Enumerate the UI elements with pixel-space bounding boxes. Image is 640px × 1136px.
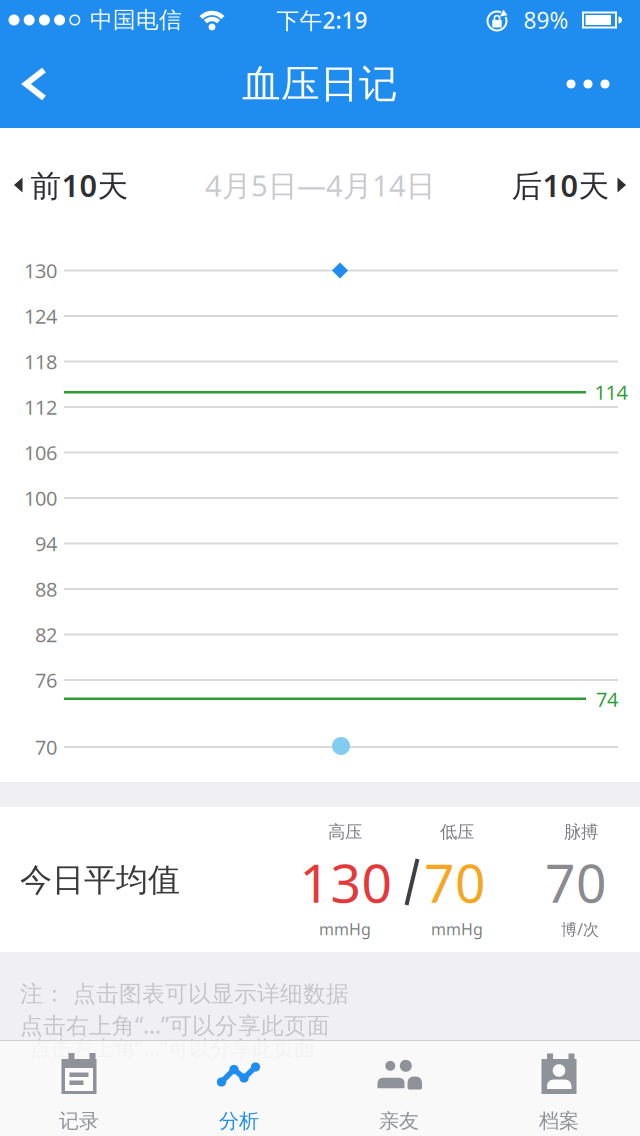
- staticText: 74: [596, 686, 618, 712]
- staticText: 89%: [523, 5, 568, 35]
- staticText: 低压: [440, 821, 474, 843]
- staticText: 88: [35, 576, 57, 602]
- button[interactable]: Back: [15, 62, 55, 106]
- button[interactable]: More: [563, 64, 613, 104]
- staticText: mmHg: [319, 918, 371, 940]
- staticText: 记录: [59, 1109, 99, 1133]
- staticText: 档案: [539, 1109, 579, 1133]
- staticText: 70: [424, 847, 486, 917]
- staticText: 今日平均值: [20, 860, 180, 900]
- staticText: 106: [24, 439, 57, 466]
- staticText: 博/次: [561, 918, 599, 940]
- staticText: 中国电信: [90, 6, 182, 34]
- staticText: 94: [35, 530, 57, 557]
- staticText: 高压: [328, 821, 362, 843]
- staticText: 130: [24, 257, 57, 284]
- button[interactable]: 记录: [0, 1038, 160, 1136]
- staticText: 前10天: [30, 165, 128, 205]
- staticText: 82: [35, 621, 57, 648]
- staticText: 脉搏: [564, 821, 598, 843]
- staticText: 后10天: [511, 165, 609, 205]
- button[interactable]: 亲友: [320, 1038, 480, 1136]
- staticText: 注： 点击图表可以显示详细数据: [20, 980, 349, 1008]
- staticText: 124: [24, 303, 57, 329]
- button[interactable]: 分析: [160, 1038, 320, 1136]
- staticText: 112: [24, 394, 57, 420]
- button[interactable]: 前10天: [13, 163, 128, 207]
- staticText: mmHg: [431, 918, 483, 940]
- staticText: 114: [594, 379, 627, 405]
- button[interactable]: 后10天: [511, 163, 626, 207]
- staticText: 100: [24, 485, 57, 511]
- staticText: 130: [299, 847, 392, 917]
- staticText: 血压日记: [242, 60, 398, 108]
- staticText: 点击右上角“…”可以分享此页面: [20, 1010, 330, 1040]
- staticText: 70: [35, 734, 57, 760]
- staticText: 亲友: [379, 1109, 419, 1133]
- staticText: 76: [35, 667, 57, 693]
- staticText: 下午2:19: [276, 5, 367, 35]
- staticText: 4月5日—4月14日: [205, 165, 435, 204]
- staticText: 分析: [219, 1109, 259, 1133]
- staticText: 点击右上角“…”可以分享此页面: [30, 1034, 315, 1062]
- button[interactable]: 档案: [480, 1038, 640, 1136]
- staticText: 70: [545, 847, 607, 917]
- staticText: 118: [24, 348, 57, 375]
